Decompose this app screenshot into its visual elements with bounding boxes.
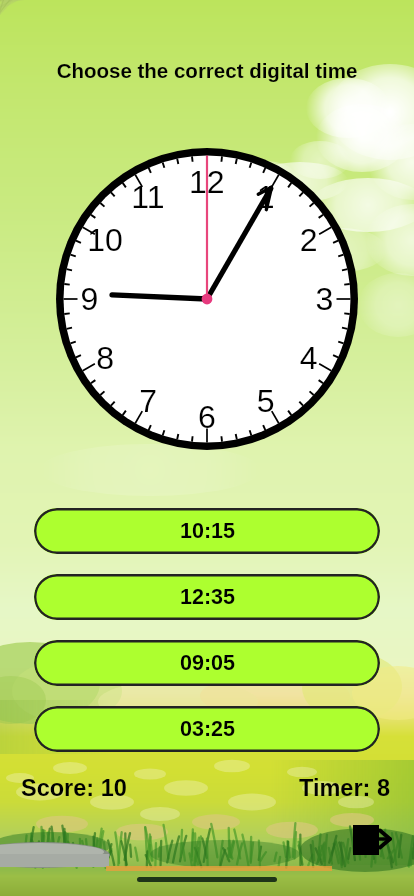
staticText: Choose the correct digital time <box>0 59 414 82</box>
staticText: 10:15 <box>180 519 235 543</box>
staticText: Timer: 8 <box>299 775 390 801</box>
staticText: 09:05 <box>180 651 235 675</box>
staticText: 03:25 <box>180 717 235 741</box>
button[interactable]: 09:05 <box>34 640 380 686</box>
button[interactable]: 03:25 <box>34 706 380 752</box>
button[interactable]: 12:35 <box>34 574 380 620</box>
staticText: 12:35 <box>180 585 235 609</box>
button[interactable]: Next <box>350 820 394 864</box>
button[interactable]: 10:15 <box>34 508 380 554</box>
staticText: Score: 10 <box>21 775 127 801</box>
